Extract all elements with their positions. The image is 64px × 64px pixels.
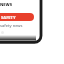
staticText: SAFETY <box>1 15 16 20</box>
button[interactable]: NEWS <box>0 0 64 9</box>
button[interactable]: SAFETY <box>0 13 34 21</box>
staticText: NEWS <box>0 2 12 7</box>
button[interactable]: Profile <box>1 31 4 34</box>
staticText: safety news <box>0 23 23 28</box>
